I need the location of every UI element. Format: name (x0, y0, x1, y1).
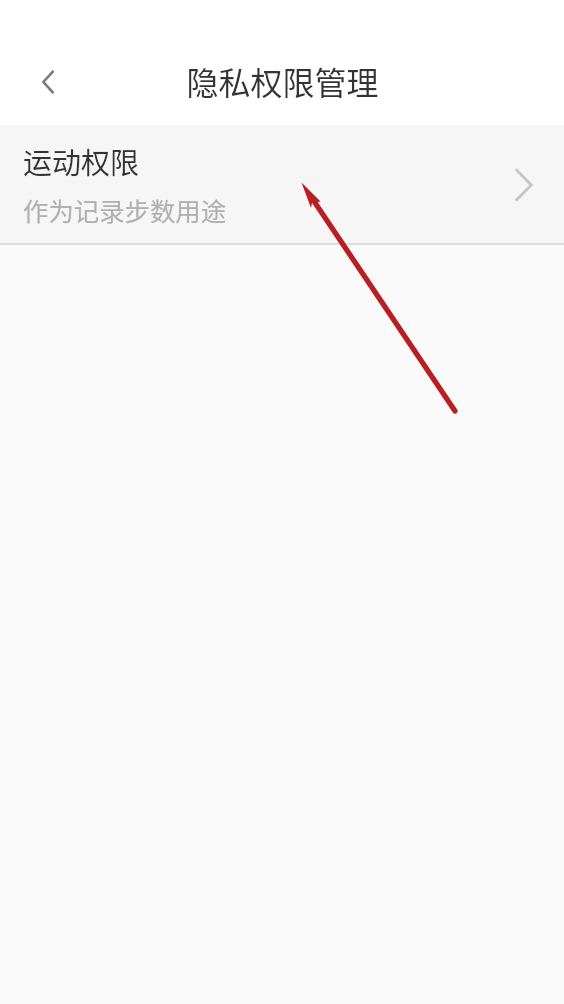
staticText: 作为记录步数用途 (23, 192, 227, 229)
staticText: 隐私权限管理 (186, 58, 379, 104)
button[interactable]: 运动权限 (0, 125, 564, 245)
button[interactable]: Back (20, 54, 76, 110)
staticText: 运动权限 (23, 140, 140, 182)
